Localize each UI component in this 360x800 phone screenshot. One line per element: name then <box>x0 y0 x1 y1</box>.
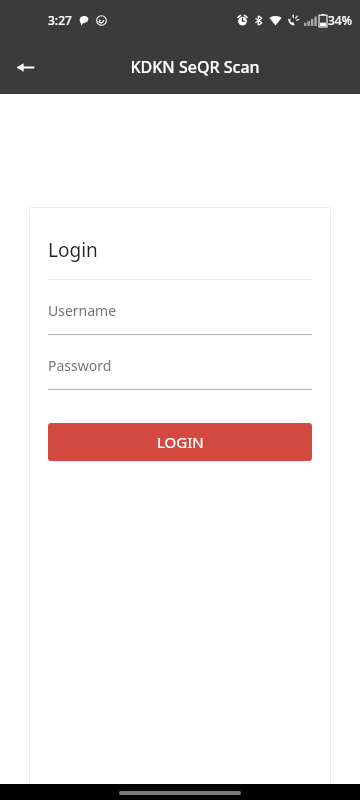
staticText: KDKN SeQR Scan <box>130 56 260 78</box>
staticText: LOGIN <box>157 432 204 452</box>
staticText: 34% <box>328 12 352 28</box>
button[interactable]: Username <box>48 280 312 335</box>
button[interactable]: LOGIN <box>48 423 312 461</box>
button[interactable]: Password <box>48 335 312 390</box>
button[interactable]: Back <box>9 51 41 83</box>
staticText: 3:27 <box>48 12 72 28</box>
staticText: Login <box>48 237 98 263</box>
staticText: Username <box>48 301 117 320</box>
staticText: Password <box>48 356 112 375</box>
